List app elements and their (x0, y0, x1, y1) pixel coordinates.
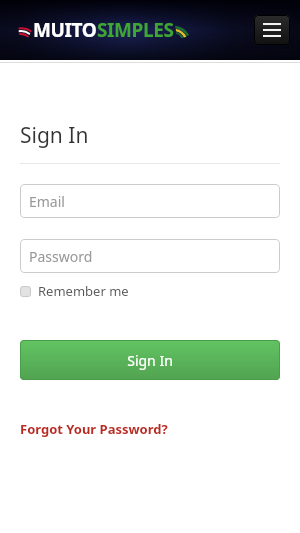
button[interactable]: Remember me (20, 280, 129, 302)
button[interactable]: Email (20, 184, 280, 218)
staticText: Email (29, 192, 65, 211)
staticText: MUITO (33, 17, 97, 43)
button[interactable]: Open menu (254, 15, 290, 45)
staticText: Forgot Your Password? (20, 420, 168, 438)
staticText: Sign In (20, 121, 89, 150)
button[interactable]: Forgot Your Password? (20, 420, 168, 438)
staticText: Password (29, 247, 93, 266)
staticText: Remember me (38, 282, 129, 300)
staticText: Sign In (127, 351, 173, 370)
button[interactable]: Muito Simples home (18, 17, 190, 43)
staticText: SIMPLES (97, 17, 174, 43)
button[interactable]: Password (20, 239, 280, 273)
button[interactable]: Sign In (20, 340, 280, 380)
